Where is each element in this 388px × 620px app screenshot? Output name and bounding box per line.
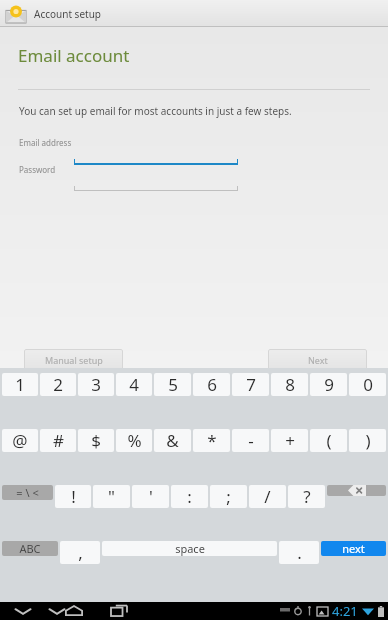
button[interactable]: 2: [40, 373, 76, 396]
button[interactable]: %: [116, 429, 152, 452]
staticText: 9: [324, 373, 334, 396]
button[interactable]: #: [40, 429, 76, 452]
staticText: Manual setup: [45, 354, 103, 366]
staticText: Password: [19, 164, 56, 175]
button[interactable]: Manual setup: [24, 349, 123, 371]
staticText: &: [166, 429, 179, 452]
staticText: %: [127, 429, 142, 452]
staticText: @: [12, 429, 28, 452]
staticText: 4: [129, 373, 139, 396]
button[interactable]: [74, 149, 238, 165]
button[interactable]: !: [55, 485, 91, 508]
button[interactable]: Recent apps: [102, 602, 136, 620]
button[interactable]: /: [249, 485, 286, 508]
staticText: 2: [53, 373, 63, 396]
button[interactable]: [74, 176, 238, 192]
button[interactable]: space: [102, 541, 277, 556]
button[interactable]: ABC: [2, 541, 58, 556]
staticText: 4:21: [332, 602, 358, 620]
button[interactable]: 1: [2, 373, 38, 396]
button[interactable]: 4: [116, 373, 152, 396]
staticText: +: [285, 429, 295, 452]
staticText: Account setup: [34, 7, 101, 21]
staticText: ": [108, 485, 115, 508]
staticText: space: [175, 541, 205, 556]
staticText: ;: [226, 485, 231, 508]
staticText: :: [187, 485, 192, 508]
staticText: ?: [303, 485, 311, 508]
staticText: next: [342, 541, 365, 556]
button[interactable]: ": [93, 485, 130, 508]
button[interactable]: 6: [193, 373, 230, 396]
staticText: $: [91, 429, 101, 452]
staticText: Email account: [18, 44, 130, 67]
button[interactable]: :: [171, 485, 208, 508]
staticText: ABC: [19, 541, 41, 556]
button[interactable]: = \ <: [2, 485, 53, 500]
button[interactable]: ': [132, 485, 169, 508]
button[interactable]: Backspace: [327, 485, 386, 496]
staticText: Next: [308, 354, 328, 366]
button[interactable]: *: [193, 429, 230, 452]
button[interactable]: ): [349, 429, 386, 452]
button[interactable]: 9: [310, 373, 347, 396]
button[interactable]: $: [78, 429, 114, 452]
button[interactable]: 8: [271, 373, 308, 396]
button[interactable]: 5: [154, 373, 191, 396]
button[interactable]: Back: [6, 602, 40, 620]
staticText: Email address: [19, 137, 72, 148]
button[interactable]: (: [310, 429, 347, 452]
staticText: 8: [285, 373, 295, 396]
button[interactable]: 7: [232, 373, 269, 396]
staticText: You can set up email for most accounts i…: [19, 104, 292, 118]
button[interactable]: ;: [210, 485, 247, 508]
staticText: = \ <: [16, 485, 39, 500]
staticText: !: [71, 485, 76, 508]
staticText: .: [297, 541, 302, 564]
button[interactable]: Home: [40, 602, 74, 620]
button[interactable]: ,: [60, 541, 100, 564]
button[interactable]: .: [279, 541, 319, 564]
staticText: -: [248, 429, 254, 452]
button[interactable]: Next: [268, 349, 367, 371]
staticText: (: [326, 429, 332, 452]
staticText: 1: [15, 373, 25, 396]
button[interactable]: +: [271, 429, 308, 452]
staticText: 7: [246, 373, 256, 396]
button[interactable]: ?: [288, 485, 325, 508]
button[interactable]: &: [154, 429, 191, 452]
button[interactable]: next: [321, 541, 386, 556]
staticText: /: [264, 485, 271, 508]
staticText: 6: [207, 373, 217, 396]
button[interactable]: 3: [78, 373, 114, 396]
staticText: ': [149, 485, 153, 508]
staticText: 3: [91, 373, 101, 396]
staticText: 0: [363, 373, 373, 396]
button[interactable]: Back: [40, 602, 74, 620]
staticText: #: [53, 429, 64, 452]
button[interactable]: 0: [349, 373, 386, 396]
staticText: 5: [168, 373, 178, 396]
staticText: *: [207, 429, 217, 452]
button[interactable]: Home: [57, 602, 91, 620]
staticText: ,: [78, 541, 83, 564]
button[interactable]: -: [232, 429, 269, 452]
button[interactable]: @: [2, 429, 38, 452]
staticText: ): [365, 429, 371, 452]
